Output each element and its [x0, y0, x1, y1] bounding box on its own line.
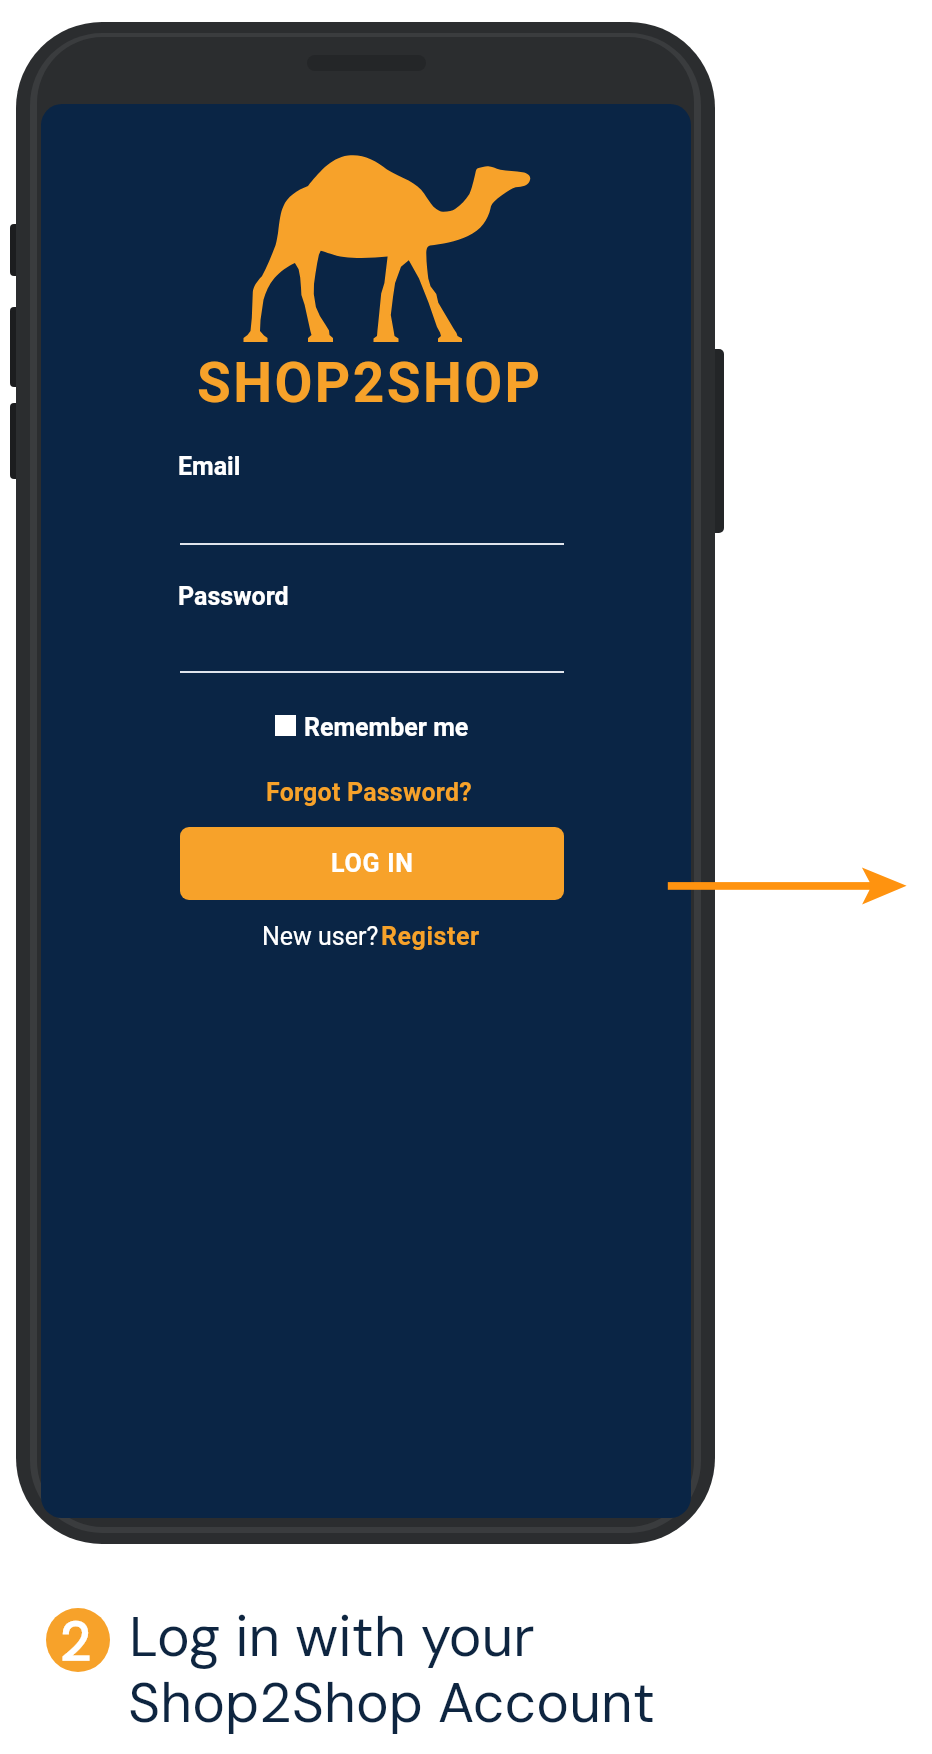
staticText: Password [178, 582, 289, 611]
staticText: Remember me [304, 713, 469, 742]
staticText: Forgot Password? [266, 778, 472, 807]
staticText: SHOP2SHOP [197, 351, 543, 415]
button[interactable]: Email input field [180, 494, 564, 545]
staticText: LOG IN [331, 849, 414, 878]
other: Arrow pointing to the next step [0, 0, 932, 1754]
other: Shop2Shop camel logo [247, 155, 529, 343]
staticText: Email [178, 452, 241, 481]
staticText: 2 [60, 1607, 92, 1676]
staticText: Register [381, 922, 480, 951]
button[interactable]: Password input field [180, 622, 564, 673]
button[interactable]: Register [381, 922, 480, 951]
staticText: Shop2Shop Account [128, 1667, 656, 1739]
staticText: New user? [262, 922, 385, 951]
button[interactable]: Remember me [275, 712, 469, 743]
staticText: Log in with your [129, 1601, 535, 1673]
button[interactable]: LOG IN [180, 827, 564, 900]
button[interactable]: Forgot Password? [260, 775, 477, 810]
